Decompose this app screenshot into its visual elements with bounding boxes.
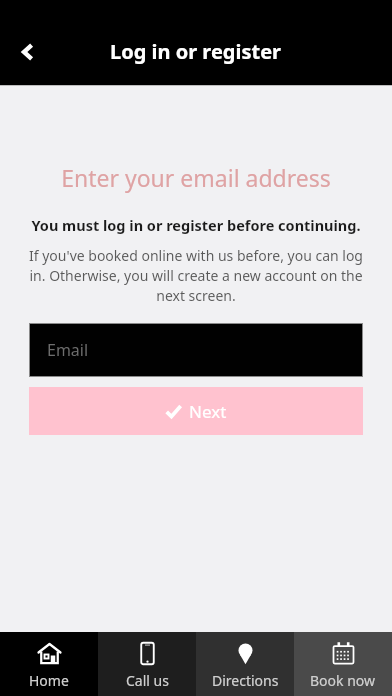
button[interactable]: Book now bbox=[294, 632, 392, 696]
staticText: Call us bbox=[126, 671, 169, 690]
button[interactable]: Back bbox=[0, 24, 56, 80]
staticText: Book now bbox=[310, 671, 376, 690]
button[interactable]: Directions bbox=[196, 632, 294, 696]
staticText: Directions bbox=[212, 671, 279, 690]
staticText: You must log in or register before conti… bbox=[31, 215, 361, 235]
staticText: If you've booked online with us before, … bbox=[22, 246, 370, 305]
staticText: Home bbox=[29, 671, 69, 690]
staticText: Next bbox=[189, 400, 227, 423]
staticText: Email bbox=[47, 339, 89, 361]
button[interactable]: Next bbox=[29, 387, 363, 435]
button[interactable]: Call us bbox=[98, 632, 196, 696]
staticText: Log in or register bbox=[110, 38, 282, 65]
button[interactable]: Email bbox=[29, 323, 363, 377]
button[interactable]: Home bbox=[0, 632, 98, 696]
staticText: Enter your email address bbox=[61, 162, 331, 193]
